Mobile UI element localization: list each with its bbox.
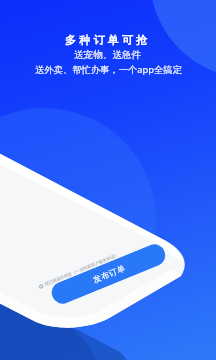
button[interactable]: 发布订单 bbox=[48, 241, 169, 307]
button[interactable]: 我已阅读并同意《一米到家用户服务协议》 bbox=[38, 252, 120, 289]
staticText: 多种订单可抢 bbox=[65, 33, 151, 47]
staticText: 我已阅读并同意《一米到家用户服务协议》 bbox=[44, 252, 120, 287]
staticText: 送外卖、帮忙办事，一个app全搞定 bbox=[35, 63, 182, 76]
staticText: 发布订单 bbox=[91, 263, 127, 285]
staticText: 送宠物、送急件 bbox=[74, 49, 142, 61]
